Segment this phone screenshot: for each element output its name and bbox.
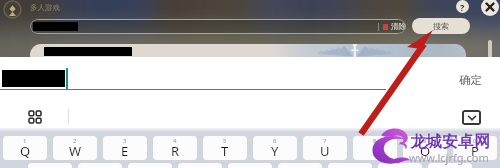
button[interactable]: G [228,163,272,168]
staticText: O [420,142,431,160]
staticText: R [171,142,180,160]
button[interactable]: Help [456,0,469,13]
staticText: 多人游戏 [30,3,60,12]
button[interactable]: 3 [103,136,147,160]
button[interactable]: 1 [3,136,47,160]
staticText: 1 [23,137,27,145]
staticText: U [320,142,330,160]
staticText: W [69,142,82,160]
button[interactable]: D [128,163,172,168]
staticText: 搜索 [433,21,449,31]
button[interactable]: 0 [453,136,497,160]
button[interactable]: A [28,163,72,168]
staticText: 2 [73,137,77,145]
staticText: I [373,142,378,160]
staticText: P [471,142,479,160]
staticText: 8 [373,137,377,145]
button[interactable]: H [278,163,322,168]
button[interactable]: 9 [403,136,447,160]
staticText: 6 [273,137,277,145]
button[interactable]: Hide keyboard [462,110,481,125]
staticText: 0 [473,137,477,145]
button[interactable]: Apps [26,108,44,126]
staticText: 9 [423,137,427,145]
staticText: 清除 [391,22,406,31]
button[interactable]: J [328,163,372,168]
staticText: 3 [123,137,127,145]
staticText: 5 [223,137,227,145]
button[interactable]: K [378,163,422,168]
button[interactable]: 8 [353,136,397,160]
staticText: www.lcjrfg.com [409,150,489,165]
button[interactable]: 5 [203,136,247,160]
button[interactable]: Close [481,0,499,16]
staticText: 4 [173,137,177,145]
button[interactable]: F [178,163,222,168]
button[interactable]: 2 [53,136,97,160]
staticText: E [121,142,129,160]
staticText: ? [460,1,465,13]
staticText: 7 [323,137,327,145]
staticText: Y [271,142,279,160]
staticText: T [221,142,229,160]
button[interactable]: S [78,163,122,168]
button[interactable]: 6 [253,136,297,160]
staticText: Q [20,142,31,160]
staticText: 龙城安卓网 [410,132,490,152]
button[interactable]: 4 [153,136,197,160]
button[interactable]: 搜索 [412,18,470,34]
button[interactable]: 7 [303,136,347,160]
button[interactable]: 确定 [450,70,490,89]
button[interactable]: 清除 [30,19,406,34]
button[interactable]: L [428,163,472,168]
staticText: 确定 [459,73,482,87]
